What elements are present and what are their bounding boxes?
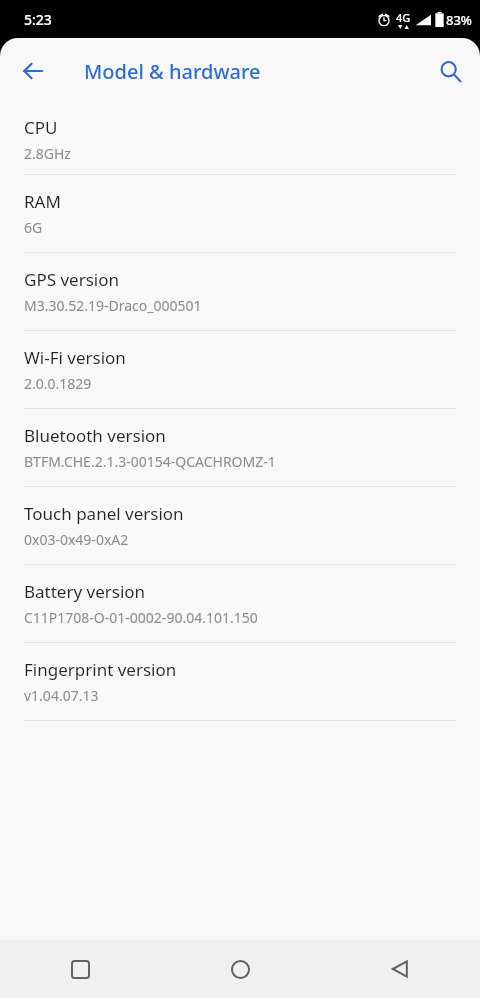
staticText: 5:23 [24, 10, 52, 29]
staticText: Model & hardware [84, 58, 261, 85]
button[interactable]: CPU [0, 104, 480, 175]
button[interactable]: Search [426, 47, 474, 95]
staticText: 4G [396, 10, 411, 25]
button[interactable]: Back [320, 940, 480, 998]
button[interactable]: Home [160, 940, 320, 998]
staticText: M3.30.52.19-Draco_000501 [24, 296, 202, 315]
button[interactable]: Back [9, 47, 57, 95]
button[interactable]: RAM [0, 175, 480, 253]
staticText: v1.04.07.13 [24, 686, 99, 705]
staticText: Bluetooth version [24, 424, 166, 447]
staticText: 2.0.0.1829 [24, 374, 92, 393]
staticText: Battery version [24, 580, 146, 603]
staticText: RAM [24, 190, 61, 213]
staticText: C11P1708-O-01-0002-90.04.101.150 [24, 608, 258, 627]
button[interactable]: Bluetooth version [0, 409, 480, 487]
staticText: Fingerprint version [24, 658, 177, 681]
staticText: BTFM.CHE.2.1.3-00154-QCACHROMZ-1 [24, 452, 276, 471]
button[interactable]: Wi-Fi version [0, 331, 480, 409]
staticText: Touch panel version [24, 502, 184, 525]
button[interactable]: Battery version [0, 565, 480, 643]
staticText: 2.8GHz [24, 144, 71, 163]
staticText: CPU [24, 116, 58, 139]
button[interactable]: Recents [0, 940, 160, 998]
button[interactable]: Fingerprint version [0, 643, 480, 721]
staticText: 83% [446, 11, 472, 29]
staticText: 6G [24, 218, 43, 237]
staticText: GPS version [24, 268, 119, 291]
staticText: Wi-Fi version [24, 346, 126, 369]
staticText: 0x03-0x49-0xA2 [24, 530, 129, 549]
button[interactable]: Touch panel version [0, 487, 480, 565]
button[interactable]: GPS version [0, 253, 480, 331]
